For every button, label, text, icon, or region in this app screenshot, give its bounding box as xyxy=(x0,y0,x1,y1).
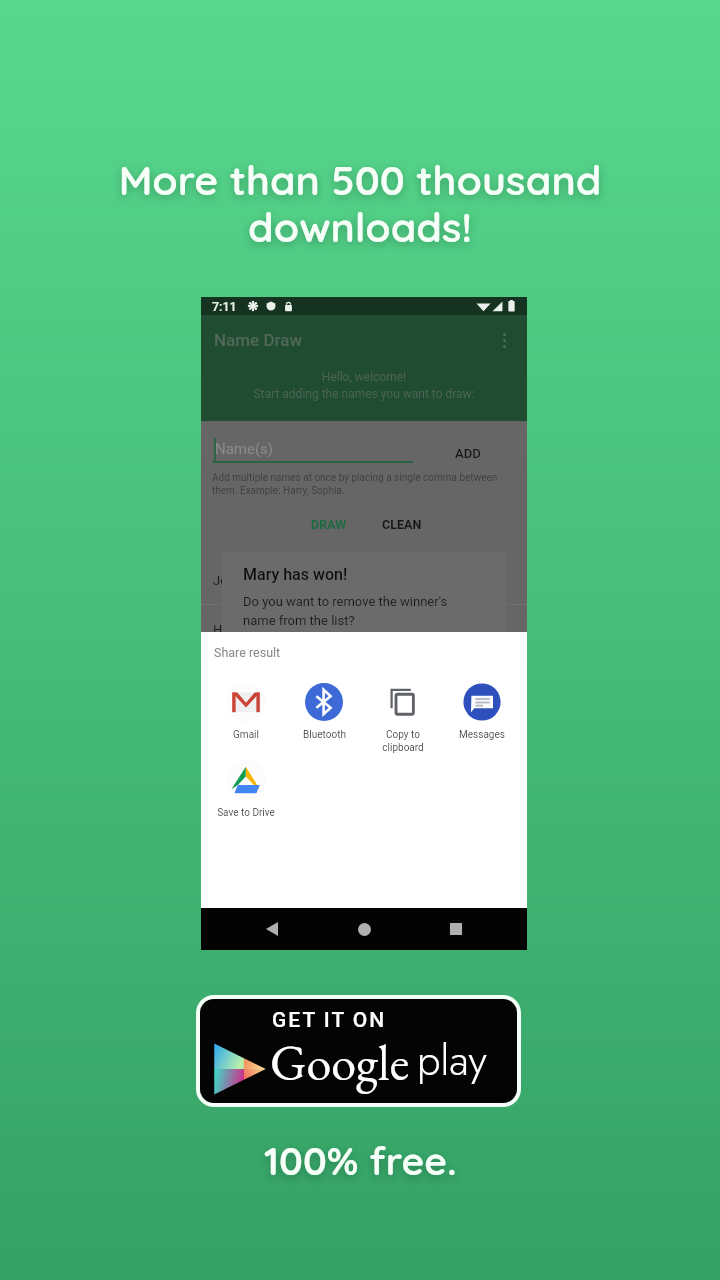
button[interactable]: Get it on Google Play xyxy=(200,999,517,1103)
button[interactable]: CLEAN xyxy=(375,513,429,536)
staticText: DRAW xyxy=(311,517,347,532)
button[interactable]: ADD xyxy=(447,441,489,466)
staticText: Google xyxy=(270,1030,410,1095)
button[interactable]: Gmail xyxy=(207,682,285,741)
button[interactable]: Messages xyxy=(442,682,521,741)
button[interactable]: Copy to clipboard xyxy=(363,682,442,754)
staticText: Mary has won! xyxy=(243,565,348,584)
staticText: Share result xyxy=(214,645,281,660)
staticText: Save to Drive xyxy=(217,807,275,819)
staticText: Gmail xyxy=(233,729,259,741)
staticText: More than 500 thousand downloads! xyxy=(0,154,720,252)
staticText: John xyxy=(213,573,242,588)
staticText: Bluetooth xyxy=(303,729,346,741)
staticText: Add multiple names at once by placing a … xyxy=(212,472,517,497)
staticText: Messages xyxy=(459,729,505,741)
button[interactable]: More options xyxy=(489,325,519,355)
button[interactable]: Back xyxy=(251,908,293,950)
button[interactable]: DRAW xyxy=(304,513,354,536)
button[interactable]: Bluetooth xyxy=(285,682,363,741)
staticText: Do you want to remove the winner's name … xyxy=(243,594,448,628)
staticText: GET IT ON xyxy=(272,1008,387,1033)
staticText: 100% free. xyxy=(264,1136,457,1185)
button[interactable]: Home xyxy=(343,908,385,950)
staticText: CLEAN xyxy=(382,517,422,532)
button[interactable]: Harry xyxy=(201,605,527,653)
staticText: ADD xyxy=(455,446,481,461)
staticText: Name(s) xyxy=(215,440,274,458)
staticText: Name Draw xyxy=(214,330,303,350)
staticText: Copy to clipboard xyxy=(382,729,424,754)
staticText: 7:11 xyxy=(212,299,237,314)
staticText: Harry xyxy=(213,622,245,637)
button[interactable]: Save to Drive xyxy=(207,760,285,819)
staticText: play xyxy=(417,1030,487,1091)
button[interactable]: John xyxy=(201,556,527,604)
staticText: Hello, welcome! Start adding the names y… xyxy=(201,370,527,401)
button[interactable]: Recents xyxy=(435,908,477,950)
button[interactable]: Sophia xyxy=(201,654,527,702)
